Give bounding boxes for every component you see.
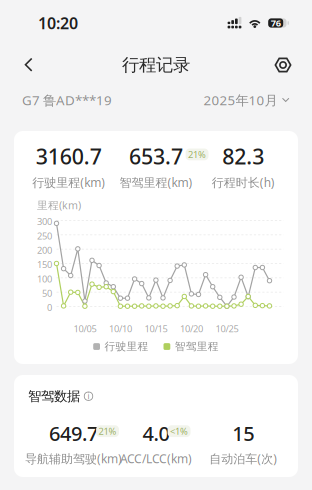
staticText: 649.7	[49, 420, 98, 447]
staticText: i	[87, 391, 89, 401]
staticText: 10:20	[38, 12, 78, 34]
staticText: 21%	[98, 425, 116, 437]
staticText: 10/15	[144, 322, 167, 335]
staticText: 250	[37, 230, 52, 242]
staticText: 10/25	[215, 322, 238, 335]
staticText: 15	[232, 420, 254, 447]
staticText: 行驶里程	[104, 340, 148, 353]
staticText: 3160.7	[36, 142, 102, 170]
button[interactable]: Settings	[266, 48, 300, 82]
staticText: 76	[271, 17, 281, 29]
staticText: 10/05	[73, 322, 96, 335]
staticText: 10/10	[109, 322, 132, 335]
staticText: 82.3	[222, 142, 264, 170]
staticText: 里程(km)	[37, 198, 81, 212]
staticText: 行驶里程(km)	[32, 174, 105, 190]
staticText: 21%	[188, 148, 206, 161]
staticText: 200	[37, 244, 52, 256]
staticText: 653.7	[129, 142, 183, 170]
staticText: 智驾里程(km)	[119, 174, 192, 190]
staticText: 2025年10月	[203, 91, 277, 109]
staticText: 智驾里程	[175, 340, 219, 353]
staticText: 行程记录	[122, 54, 190, 76]
button[interactable]: G7 鲁AD***19	[22, 91, 112, 109]
staticText: 导航辅助驾驶(km)	[25, 451, 122, 466]
staticText: 4.0	[142, 420, 169, 447]
staticText: ACC/LCC(km)	[120, 451, 192, 466]
button[interactable]: 2025年10月	[203, 91, 290, 109]
staticText: 0	[47, 301, 52, 314]
staticText: 智驾数据	[28, 388, 80, 404]
staticText: 50	[42, 287, 52, 299]
staticText: <1%	[170, 425, 188, 437]
staticText: 150	[37, 258, 52, 271]
staticText: 自动泊车(次)	[209, 451, 277, 466]
staticText: 10/20	[180, 322, 203, 335]
button[interactable]: Back	[12, 48, 46, 82]
staticText: 300	[37, 215, 52, 228]
staticText: G7 鲁AD***19	[22, 91, 112, 109]
staticText: 行程时长(h)	[212, 174, 275, 190]
staticText: 100	[37, 273, 52, 285]
